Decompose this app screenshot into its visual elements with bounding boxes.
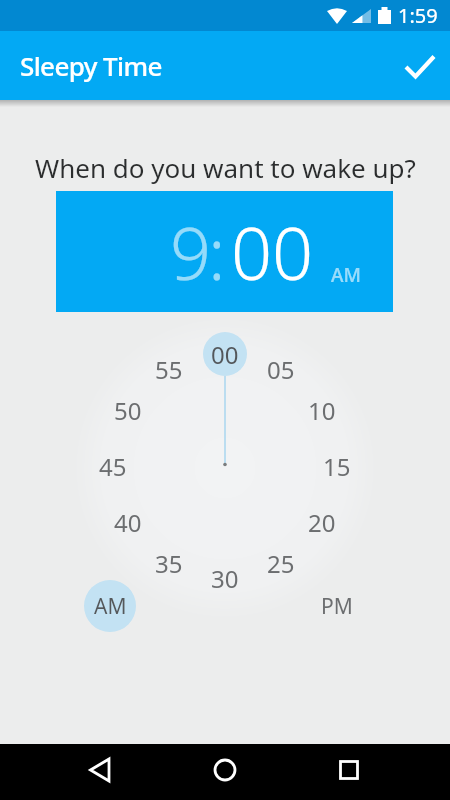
staticText: 00 — [231, 203, 314, 301]
staticText: Sleepy Time — [20, 48, 162, 83]
button[interactable]: 10 — [300, 388, 344, 432]
button[interactable]: 55 — [147, 347, 191, 391]
button[interactable]: 15 — [315, 444, 359, 488]
button[interactable]: 35 — [147, 541, 191, 585]
button[interactable]: 30 — [203, 556, 247, 600]
button[interactable]: 00 — [203, 332, 247, 376]
staticText: 40 — [114, 506, 142, 539]
staticText: 15 — [323, 450, 351, 483]
button[interactable]: 9 — [56, 191, 393, 312]
staticText: 10 — [308, 394, 336, 427]
staticText: 9 — [170, 203, 212, 301]
button[interactable] — [78, 748, 122, 792]
staticText: AM — [331, 262, 361, 288]
button[interactable] — [203, 748, 247, 792]
staticText: 55 — [155, 353, 183, 386]
button[interactable] — [327, 748, 371, 792]
staticText: : — [208, 203, 226, 301]
button[interactable]: 45 — [91, 444, 135, 488]
button[interactable]: PM — [311, 580, 363, 632]
button[interactable]: 50 — [106, 388, 150, 432]
staticText: 05 — [267, 353, 295, 386]
button[interactable]: AM — [84, 580, 136, 632]
staticText: When do you want to wake up? — [35, 150, 416, 185]
staticText: PM — [321, 592, 353, 621]
staticText: 25 — [267, 547, 295, 580]
button[interactable]: 40 — [106, 500, 150, 544]
staticText: 20 — [308, 506, 336, 539]
button[interactable]: 20 — [300, 500, 344, 544]
button[interactable] — [398, 44, 442, 88]
staticText: AM — [94, 592, 127, 621]
staticText: 50 — [114, 394, 142, 427]
staticText: 30 — [211, 562, 239, 595]
staticText: 1:59 — [398, 2, 438, 29]
staticText: 45 — [99, 450, 127, 483]
button[interactable]: 05 — [259, 347, 303, 391]
button[interactable]: 25 — [259, 541, 303, 585]
staticText: 00 — [211, 338, 239, 371]
staticText: 35 — [155, 547, 183, 580]
